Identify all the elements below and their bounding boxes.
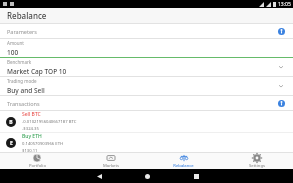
staticText: Market Cap TOP 10 [7,67,67,76]
button[interactable]: Recent apps [190,170,202,182]
button[interactable]: Amount [0,39,293,58]
button[interactable]: Settings [220,153,293,169]
button[interactable]: Portfolio [0,153,74,169]
button[interactable]: Information about Transactions [275,97,287,109]
staticText: Buy and Sell [7,86,45,95]
staticText: 13:05 [278,1,291,8]
staticText: -0.01021956040667187 BTC [22,119,77,125]
button[interactable]: B [0,111,293,133]
staticText: Sell BTC [22,111,41,118]
staticText: B [9,119,13,126]
staticText: 0.140570903966 ETH [22,141,64,147]
staticText: Buy ETH [22,133,42,140]
staticText: Trading mode [7,78,37,84]
button[interactable]: Trading mode [0,77,293,96]
staticText: 100 [7,48,19,57]
staticText: Markets [103,163,119,169]
button[interactable]: Home [141,170,153,182]
staticText: Settings [249,163,265,169]
staticText: E [10,140,13,147]
staticText: Rebalance [7,10,47,21]
button[interactable]: Rebalance [147,153,220,169]
staticText: -$324.35 [22,126,39,132]
button[interactable]: Information about Parameters [275,25,287,37]
staticText: Transactions [7,100,40,107]
staticText: Amount [7,40,24,46]
button[interactable]: Back [93,170,105,182]
staticText: Portfolio [29,163,46,169]
staticText: $130.11 [22,148,38,152]
button[interactable]: E [0,133,293,152]
staticText: Rebalance [173,163,194,169]
button[interactable]: Benchmark [0,58,293,77]
staticText: Parameters [7,28,37,35]
staticText: Benchmark [7,59,32,65]
button[interactable]: Markets [74,153,147,169]
